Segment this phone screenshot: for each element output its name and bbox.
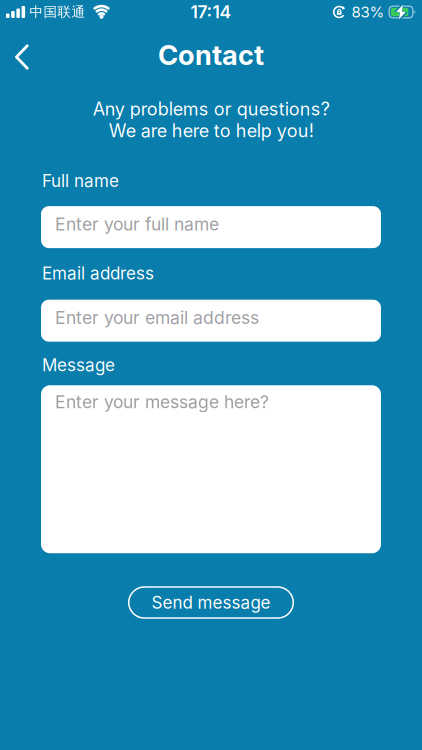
staticText: Any problems or questions? We are here t… — [92, 98, 329, 142]
staticText: Enter your email address — [55, 307, 259, 328]
button[interactable]: Send message — [128, 586, 294, 619]
staticText: Enter your message here? — [55, 391, 269, 412]
staticText: Message — [42, 355, 115, 375]
staticText: Contact — [158, 38, 264, 72]
staticText: Send message — [151, 592, 270, 613]
staticText: 17:14 — [190, 1, 231, 23]
button[interactable]: Enter your email address — [41, 300, 381, 342]
button[interactable]: Enter your message here? — [41, 385, 381, 553]
staticText: 83% — [351, 3, 384, 21]
staticText: Enter your full name — [55, 213, 219, 235]
button[interactable]: Enter your full name — [41, 206, 381, 248]
button[interactable]: Back — [0, 39, 29, 70]
staticText: Email address — [42, 263, 154, 284]
staticText: 中国联通 — [29, 3, 85, 20]
staticText: Full name — [42, 171, 119, 191]
